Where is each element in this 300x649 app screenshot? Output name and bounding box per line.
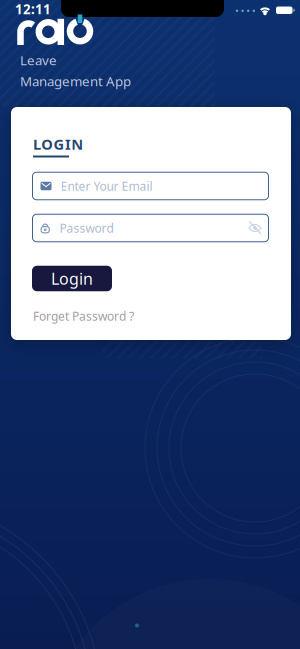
staticText: Leave (20, 51, 57, 69)
staticText: 12:11 (15, 0, 51, 18)
staticText: Login (51, 268, 93, 289)
staticText: Forget Password ? (33, 308, 134, 324)
button[interactable]: Enter Your Email (32, 172, 268, 200)
button[interactable]: Login (32, 266, 112, 291)
staticText: Password (59, 220, 113, 236)
staticText: Enter Your Email (60, 178, 152, 194)
button[interactable]: Password (32, 214, 268, 242)
button[interactable]: Forget Password ? (33, 308, 183, 324)
staticText: Management App (20, 72, 131, 90)
staticText: LOGIN (33, 134, 83, 154)
